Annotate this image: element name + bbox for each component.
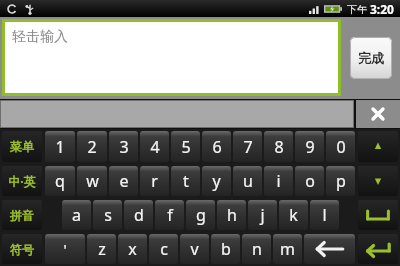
button[interactable]: 0 — [326, 131, 355, 162]
button[interactable]: a — [62, 200, 91, 230]
button[interactable]: l — [310, 200, 339, 230]
button[interactable]: p — [326, 166, 355, 196]
staticText: 8 — [274, 136, 284, 158]
staticText: j — [260, 204, 265, 226]
staticText: q — [55, 170, 65, 192]
button[interactable]: Close keyboard — [356, 100, 400, 128]
staticText: 菜单 — [10, 139, 34, 154]
staticText: 3 — [119, 136, 129, 158]
button[interactable]: g — [186, 200, 215, 230]
staticText: 完成 — [358, 50, 384, 66]
button[interactable]: Enter — [358, 234, 398, 264]
staticText: n — [252, 238, 262, 260]
button[interactable]: 3 — [109, 131, 138, 162]
button[interactable]: n — [242, 234, 271, 264]
staticText: d — [134, 204, 144, 226]
button[interactable]: q — [45, 166, 75, 196]
button[interactable]: 完成 — [350, 37, 392, 79]
staticText: u — [243, 170, 253, 192]
staticText: 符号 — [10, 242, 34, 257]
button[interactable]: b — [211, 234, 240, 264]
button[interactable]: u — [233, 166, 262, 196]
button[interactable]: ' — [45, 234, 85, 264]
button[interactable]: t — [171, 166, 200, 196]
staticText: k — [289, 204, 298, 226]
staticText: 3:20 — [370, 1, 394, 17]
staticText: f — [167, 204, 173, 226]
staticText: 7 — [243, 136, 253, 158]
staticText: 6 — [212, 136, 222, 158]
staticText: r — [151, 170, 158, 192]
other: Backspace — [303, 232, 356, 266]
staticText: s — [104, 204, 112, 226]
button[interactable]: 9 — [295, 131, 324, 162]
staticText: p — [336, 170, 346, 192]
staticText: x — [128, 238, 137, 260]
button[interactable]: 轻击输入 — [5, 22, 338, 93]
staticText: v — [190, 238, 199, 260]
staticText: 中·英 — [8, 173, 36, 189]
button[interactable]: 菜单 — [2, 131, 42, 162]
staticText: t — [183, 170, 189, 192]
staticText: ' — [63, 240, 67, 259]
button[interactable]: e — [109, 166, 138, 196]
button[interactable] — [0, 100, 354, 128]
staticText: e — [119, 170, 129, 192]
button[interactable]: y — [202, 166, 231, 196]
button[interactable]: Page down — [358, 166, 398, 196]
button[interactable]: r — [140, 166, 169, 196]
button[interactable]: k — [279, 200, 308, 230]
staticText: 拼音 — [10, 208, 34, 223]
button[interactable]: i — [264, 166, 293, 196]
staticText: w — [86, 170, 99, 192]
button[interactable]: 4 — [140, 131, 169, 162]
staticText: l — [322, 204, 327, 226]
button[interactable]: m — [273, 234, 302, 264]
staticText: 4 — [150, 136, 160, 158]
button[interactable]: o — [295, 166, 324, 196]
button[interactable]: 6 — [202, 131, 231, 162]
staticText: 轻击输入 — [12, 28, 68, 46]
staticText: 下午 — [347, 3, 367, 16]
staticText: h — [227, 204, 237, 226]
button[interactable]: s — [93, 200, 122, 230]
staticText: y — [212, 170, 221, 192]
staticText: a — [72, 204, 81, 226]
button[interactable]: 1 — [45, 131, 75, 162]
button[interactable]: 2 — [77, 131, 107, 162]
button[interactable] — [304, 234, 355, 264]
button[interactable]: 8 — [264, 131, 293, 162]
staticText: 2 — [87, 136, 97, 158]
staticText: 9 — [305, 136, 315, 158]
staticText: o — [305, 170, 315, 192]
button[interactable]: d — [124, 200, 153, 230]
staticText: 5 — [181, 136, 191, 158]
button[interactable]: h — [217, 200, 246, 230]
button[interactable]: 符号 — [2, 234, 42, 264]
staticText: i — [276, 170, 281, 192]
staticText: m — [280, 238, 295, 260]
button[interactable]: 7 — [233, 131, 262, 162]
staticText: g — [196, 204, 206, 226]
button[interactable]: x — [118, 234, 147, 264]
button[interactable]: v — [180, 234, 209, 264]
button[interactable]: Page up — [358, 131, 398, 162]
staticText: c — [160, 238, 168, 260]
button[interactable]: w — [77, 166, 107, 196]
staticText: 1 — [55, 136, 65, 158]
button[interactable]: 中·英 — [2, 166, 42, 196]
staticText: z — [98, 238, 106, 260]
button[interactable]: f — [155, 200, 184, 230]
staticText: 0 — [336, 136, 346, 158]
button[interactable]: c — [149, 234, 178, 264]
button[interactable]: j — [248, 200, 277, 230]
button[interactable]: 5 — [171, 131, 200, 162]
button[interactable]: Space — [358, 200, 398, 230]
button[interactable]: 拼音 — [2, 200, 42, 230]
staticText: b — [221, 238, 231, 260]
button[interactable]: z — [87, 234, 116, 264]
